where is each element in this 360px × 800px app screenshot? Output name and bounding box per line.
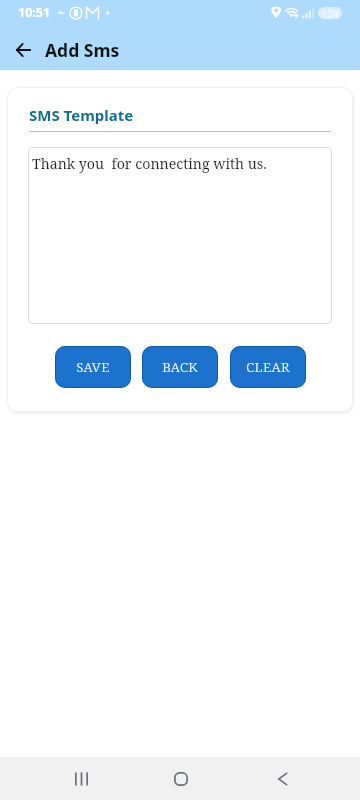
staticText: CLEAR — [246, 358, 290, 376]
button[interactable]: BACK — [142, 346, 218, 388]
button[interactable]: Back — [262, 757, 304, 800]
button[interactable]: Home — [160, 757, 202, 800]
button[interactable]: Recent apps — [60, 757, 102, 800]
staticText: 10:51 — [18, 4, 51, 21]
staticText: 24 — [327, 7, 339, 19]
staticText: Thank you for connecting with us. — [32, 154, 267, 173]
staticText: BACK — [162, 358, 198, 376]
staticText: SMS Template — [29, 105, 134, 125]
button[interactable]: Back — [8, 34, 38, 64]
button[interactable]: SAVE — [55, 346, 131, 388]
staticText: Add Sms — [45, 38, 120, 62]
button[interactable]: CLEAR — [230, 346, 306, 388]
staticText: SAVE — [76, 358, 110, 376]
